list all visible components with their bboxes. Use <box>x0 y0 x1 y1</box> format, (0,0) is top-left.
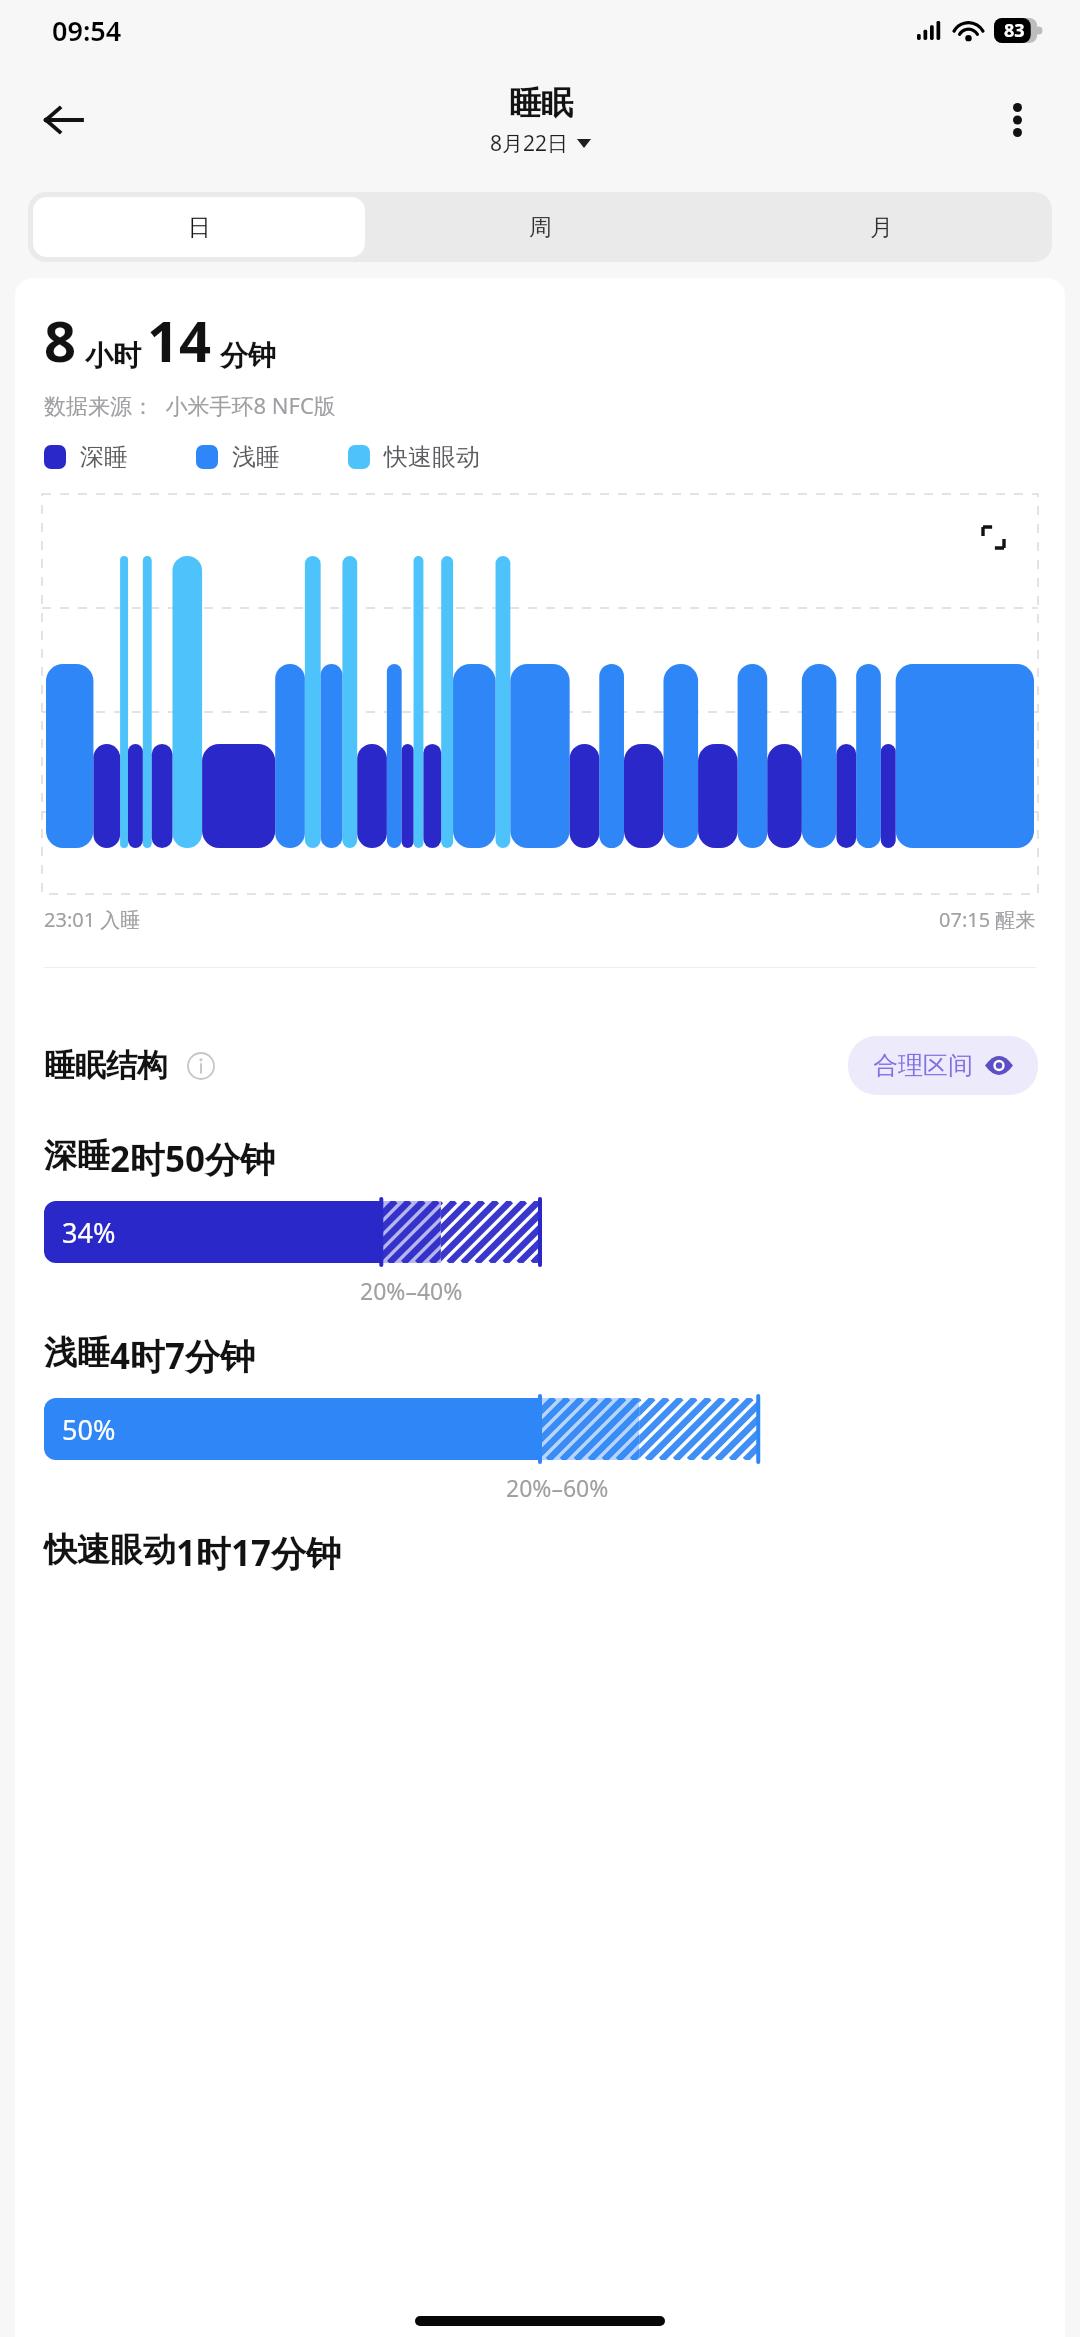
button[interactable]: 合理区间 <box>848 1036 1038 1095</box>
staticText: 周 <box>529 213 552 242</box>
staticText: 20%–40% <box>360 1275 463 1306</box>
staticText: 浅睡 <box>44 1332 110 1374</box>
staticText: 23:01 入睡 <box>44 906 141 933</box>
staticText: 14 <box>147 302 212 378</box>
button[interactable]: 月 <box>716 197 1047 257</box>
staticText: 合理区间 <box>873 1050 973 1081</box>
staticText: 快速眼动 <box>384 442 480 472</box>
button[interactable]: More options <box>980 83 1054 157</box>
staticText: 34% <box>62 1214 116 1251</box>
staticText: 日 <box>188 213 211 242</box>
staticText: 分钟 <box>220 338 276 373</box>
staticText: 09:54 <box>52 12 122 49</box>
button[interactable]: Back <box>26 82 102 158</box>
staticText: 深睡 <box>44 1135 110 1177</box>
staticText: 深睡 <box>80 442 128 472</box>
button[interactable]: 8月22日 <box>490 129 591 158</box>
staticText: 07:15 醒来 <box>939 906 1036 933</box>
staticText: 睡眠 <box>509 83 573 123</box>
staticText: 快速眼动 <box>44 1529 176 1571</box>
staticText: 83 <box>1004 18 1025 43</box>
staticText: 浅睡 <box>232 442 280 472</box>
staticText: 2时50分钟 <box>110 1135 276 1183</box>
button[interactable]: 周 <box>375 197 706 257</box>
staticText: 睡眠结构 <box>44 1046 168 1085</box>
staticText: 8月22日 <box>490 129 569 158</box>
staticText: 4时7分钟 <box>110 1332 256 1380</box>
staticText: 20%–60% <box>506 1472 609 1503</box>
staticText: 8 <box>44 302 77 378</box>
button[interactable]: 日 <box>33 197 365 257</box>
staticText: 50% <box>62 1411 116 1448</box>
staticText: 月 <box>870 213 893 242</box>
staticText: 数据来源： 小米手环8 NFC版 <box>44 390 336 420</box>
staticText: 1时17分钟 <box>176 1529 342 1577</box>
staticText: 小时 <box>85 338 141 373</box>
button[interactable]: Info <box>182 1047 220 1085</box>
button[interactable]: Expand chart <box>966 510 1020 564</box>
